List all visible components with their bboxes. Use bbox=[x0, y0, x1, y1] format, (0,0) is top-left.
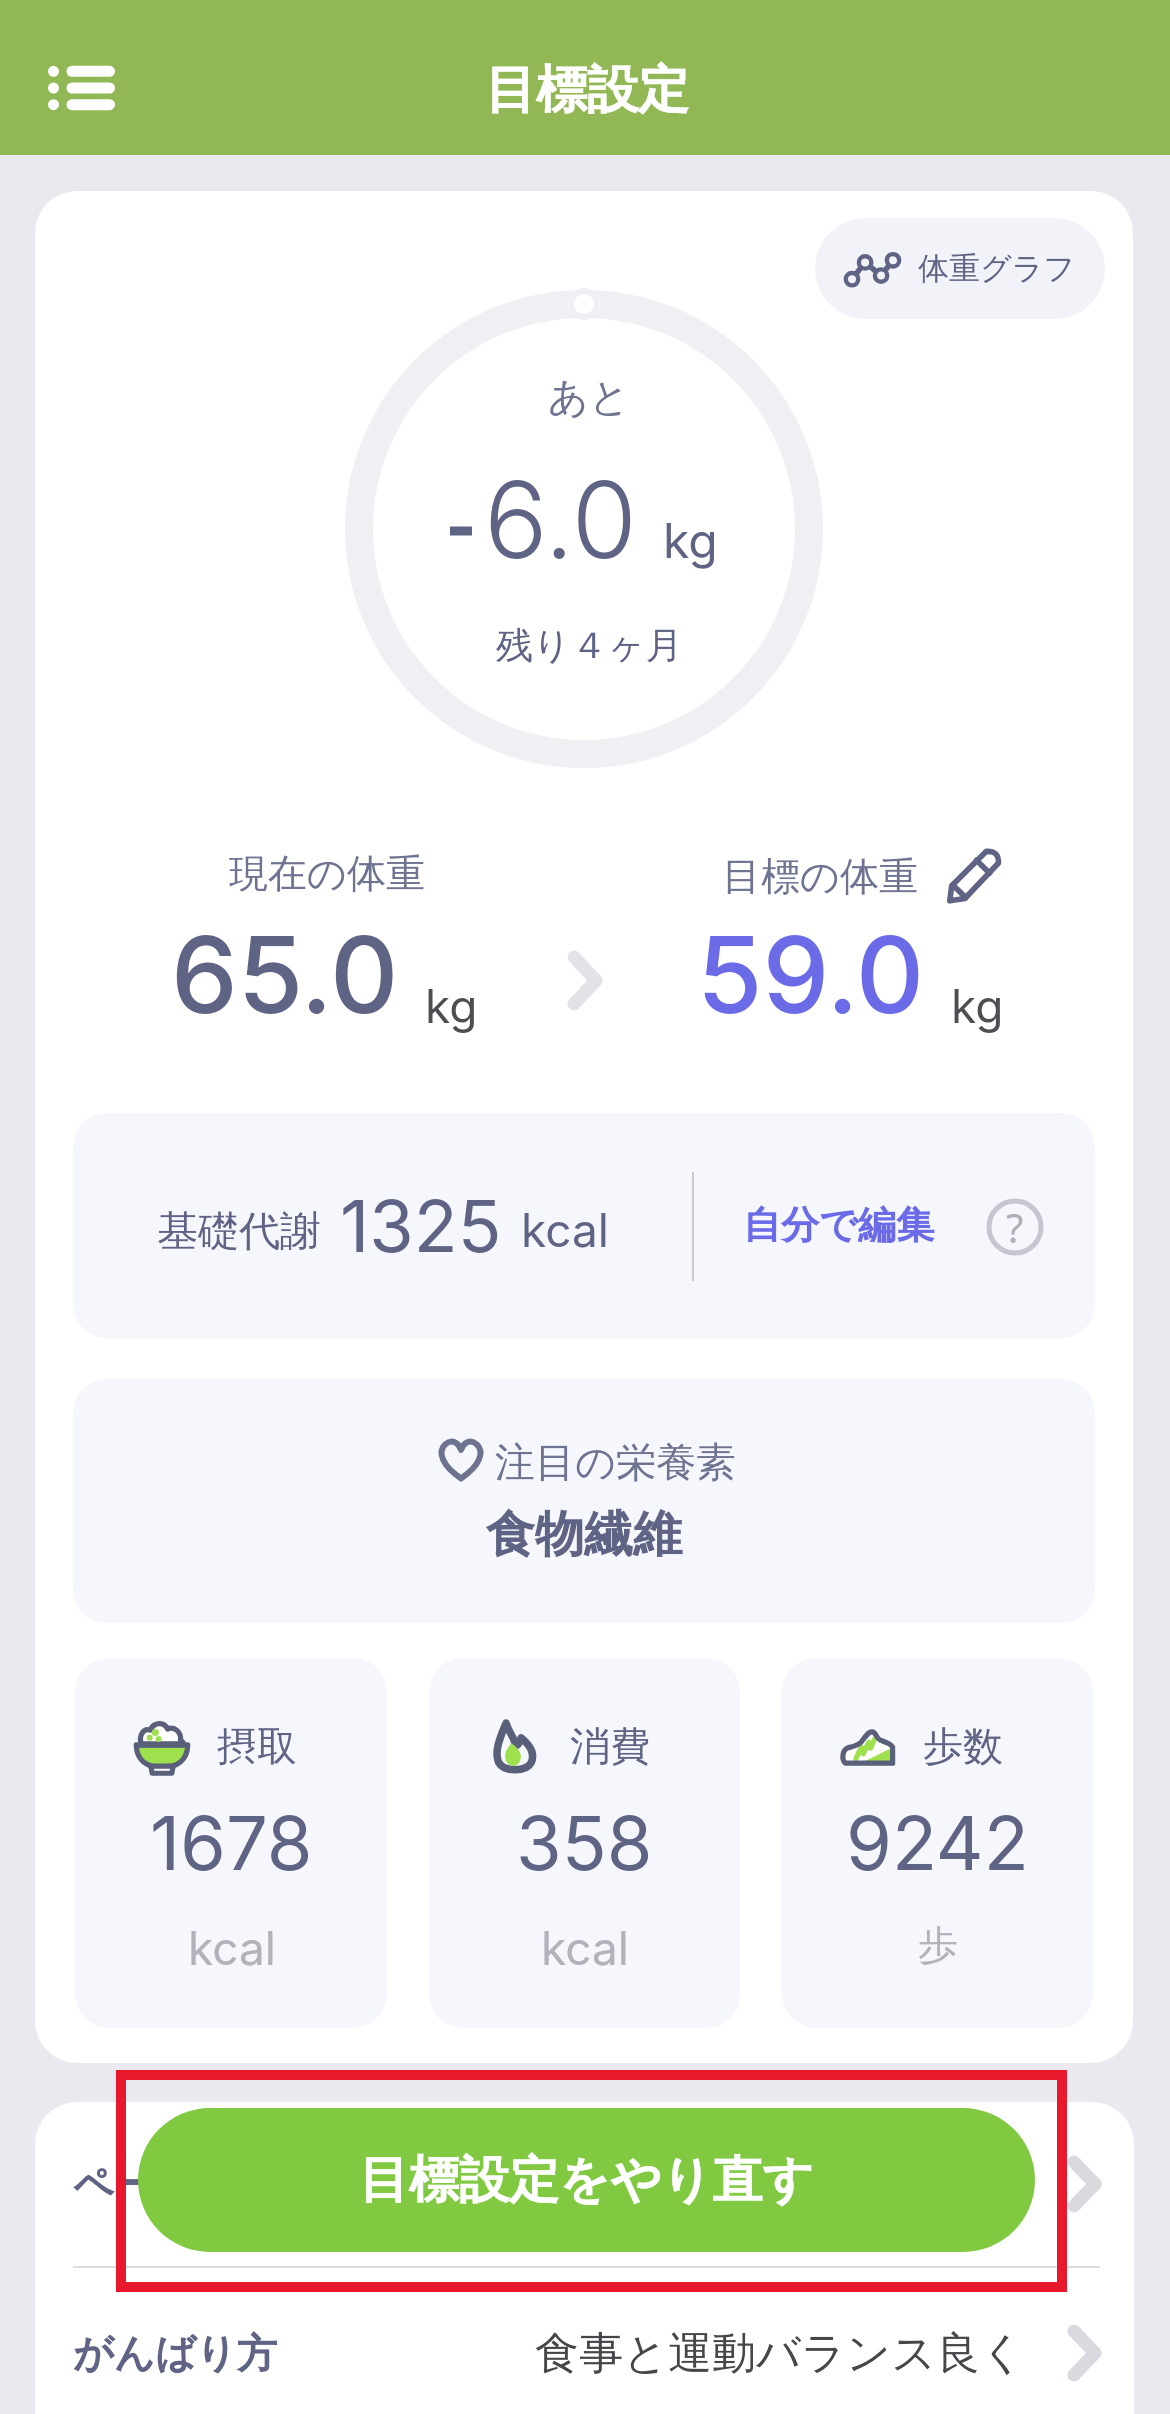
button[interactable]: Edit target weight bbox=[946, 849, 1000, 903]
staticText: kcal bbox=[188, 1920, 276, 1976]
staticText: 歩 bbox=[918, 1920, 958, 1970]
staticText: 1325 bbox=[340, 1182, 502, 1269]
staticText: kcal bbox=[521, 1202, 609, 1258]
staticText: 59.0 bbox=[697, 910, 925, 1038]
staticText: 注目の栄養素 bbox=[495, 1437, 736, 1487]
button[interactable]: 体重グラフ bbox=[815, 218, 1105, 319]
staticText: 目標設定をやり直す bbox=[359, 2149, 814, 2212]
staticText: ? bbox=[1006, 1200, 1024, 1254]
staticText: 歩数 bbox=[923, 1721, 1003, 1771]
staticText: kg bbox=[425, 978, 478, 1034]
button[interactable]: Help: basal metabolism bbox=[986, 1198, 1044, 1256]
staticText: 食物繊維 bbox=[486, 1504, 682, 1566]
staticText: 358 bbox=[516, 1798, 653, 1888]
staticText: 体重グラフ bbox=[918, 249, 1076, 288]
staticText: がんばり方 bbox=[73, 2328, 277, 2378]
staticText: 9242 bbox=[846, 1798, 1029, 1888]
button[interactable]: 自分で編集 bbox=[723, 1175, 954, 1275]
staticText: 食事と運動バランス良く bbox=[535, 2326, 1026, 2381]
button[interactable]: ペース bbox=[35, 2102, 1134, 2266]
button[interactable]: Menu bbox=[18, 42, 144, 134]
staticText: あと bbox=[548, 372, 630, 422]
staticText: 65.0 bbox=[171, 910, 399, 1038]
staticText: ペース bbox=[73, 2159, 195, 2209]
staticText: kcal bbox=[541, 1920, 629, 1976]
button[interactable]: 消費 bbox=[429, 1658, 740, 2028]
button[interactable]: がんばり方 bbox=[35, 2280, 1134, 2414]
staticText: 6.0 bbox=[484, 455, 637, 583]
staticText: 基礎代謝 bbox=[157, 1206, 321, 1258]
staticText: kg bbox=[951, 978, 1004, 1034]
staticText: 摂取 bbox=[217, 1721, 297, 1771]
button[interactable]: 歩数 bbox=[782, 1658, 1093, 2028]
staticText: kg bbox=[663, 511, 718, 569]
staticText: 自分で編集 bbox=[743, 1201, 934, 1249]
button[interactable]: 目標設定をやり直す bbox=[138, 2108, 1035, 2252]
staticText: 目標設定 bbox=[485, 58, 689, 122]
staticText: 目標の体重 bbox=[722, 852, 918, 901]
staticText: 現在の体重 bbox=[229, 849, 425, 898]
button[interactable]: 摂取 bbox=[75, 1658, 387, 2028]
staticText: 消費 bbox=[570, 1721, 650, 1771]
staticText: 1678 bbox=[150, 1798, 313, 1888]
staticText: 残り４ヶ月 bbox=[496, 622, 683, 669]
